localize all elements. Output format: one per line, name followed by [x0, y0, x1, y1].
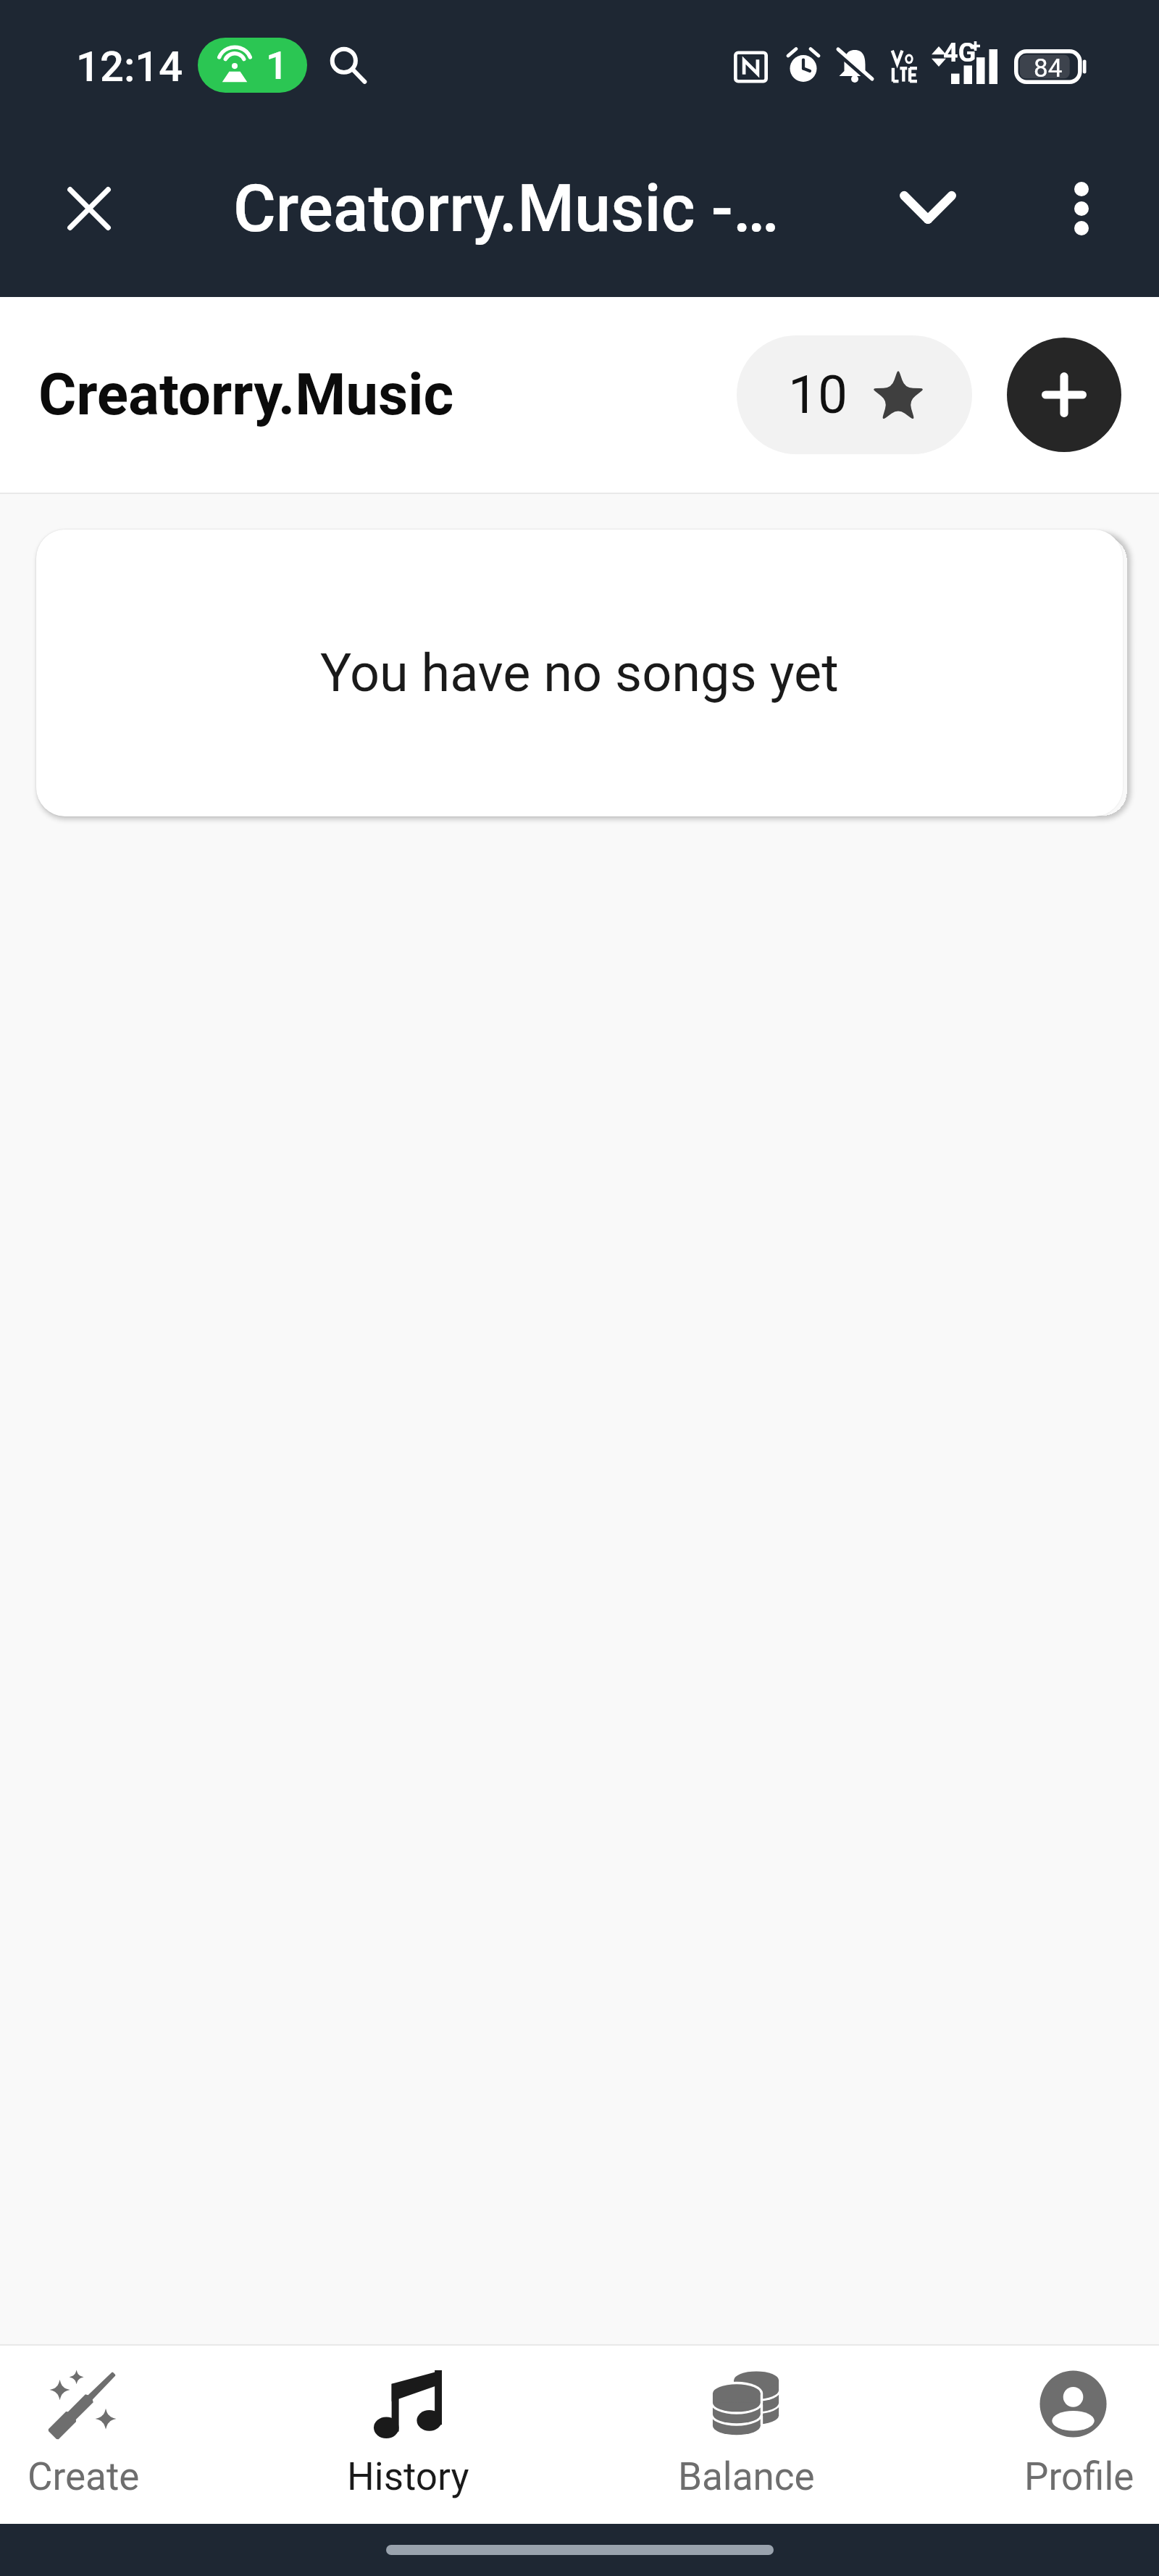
staticText: 12:14 [76, 42, 183, 91]
staticText: 1 [266, 43, 288, 88]
staticText: Profile [1024, 2454, 1134, 2499]
button[interactable]: You have no songs yet [36, 530, 1123, 816]
staticText: Creatorry.Music [38, 361, 454, 429]
staticText: History [347, 2454, 469, 2499]
staticText: 84 [1034, 54, 1063, 83]
staticText: Creatorry.Music -… [233, 171, 779, 247]
staticText: You have no songs yet [320, 643, 839, 703]
staticText: Balance [678, 2454, 815, 2499]
button[interactable]: Profile [996, 2346, 1159, 2524]
staticText: 4G [943, 38, 976, 68]
button[interactable]: 10 [737, 335, 972, 454]
staticText: 10 [788, 364, 848, 426]
button[interactable]: Expand [881, 162, 975, 256]
button[interactable]: Add [1007, 338, 1121, 452]
button[interactable]: History [325, 2346, 491, 2524]
button[interactable]: Close [42, 162, 136, 256]
staticText: Create [28, 2454, 140, 2499]
button[interactable]: Create [0, 2346, 167, 2524]
button[interactable]: Balance [663, 2346, 829, 2524]
button[interactable]: More options [1034, 162, 1129, 256]
